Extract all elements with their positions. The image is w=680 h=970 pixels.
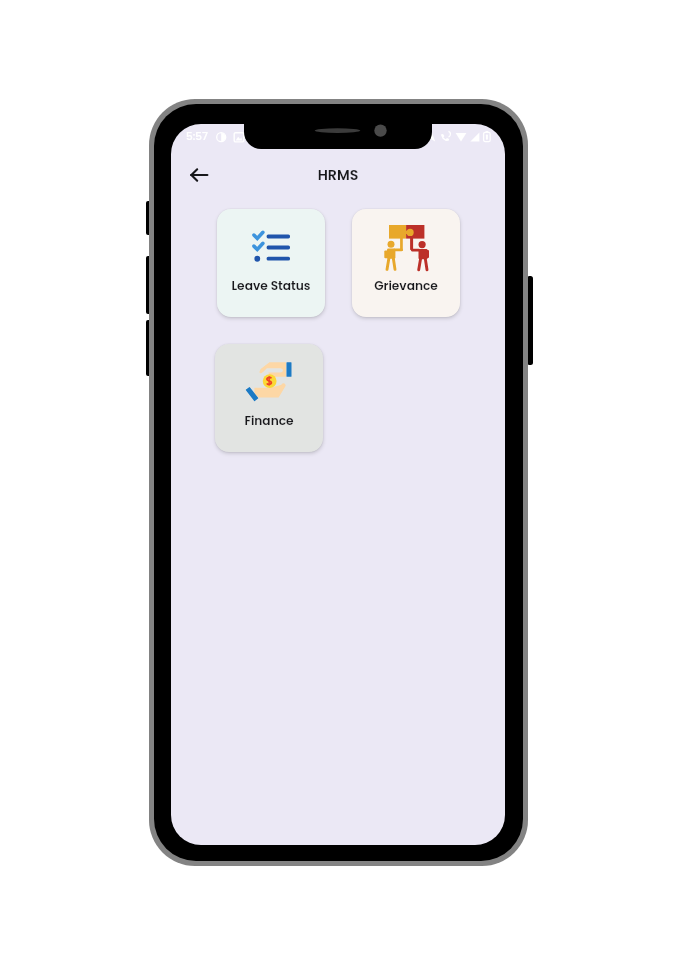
staticText: HRMS [171, 165, 505, 185]
staticText: Grievance [352, 277, 460, 294]
button[interactable]: Finance [215, 344, 323, 452]
button[interactable]: Grievance [352, 209, 460, 317]
button[interactable]: Leave Status [217, 209, 325, 317]
staticText: Finance [215, 412, 323, 429]
staticText: 5:57 [186, 129, 208, 144]
staticText: Leave Status [217, 277, 325, 294]
button[interactable]: Back [179, 160, 219, 190]
